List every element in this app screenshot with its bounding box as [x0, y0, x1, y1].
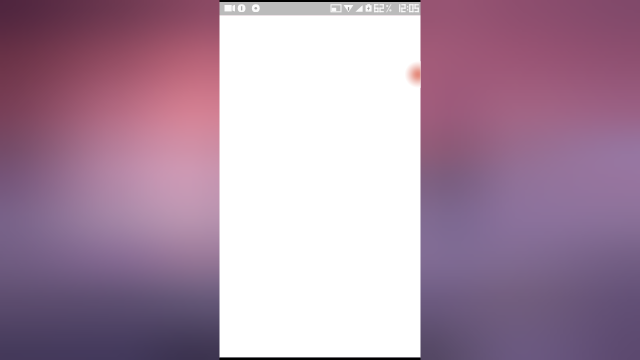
button[interactable]: [0, 0, 640, 360]
